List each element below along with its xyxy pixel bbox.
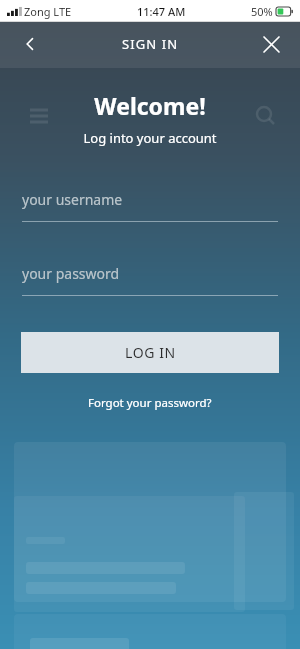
- staticText: SIGN IN: [122, 35, 179, 53]
- staticText: 11:47 AM: [137, 4, 186, 19]
- staticText: LOG IN: [125, 343, 176, 362]
- button[interactable]: Close: [255, 28, 287, 60]
- button[interactable]: LOG IN: [21, 332, 279, 373]
- staticText: 50%: [251, 4, 273, 19]
- staticText: Welcome!: [0, 90, 300, 121]
- button[interactable]: your password: [22, 264, 278, 296]
- button[interactable]: Forgot your password?: [80, 392, 220, 414]
- staticText: Forgot your password?: [88, 395, 212, 411]
- button[interactable]: your username: [22, 190, 278, 222]
- staticText: your username: [22, 190, 123, 209]
- staticText: your password: [22, 264, 120, 283]
- staticText: Log into your account: [0, 129, 300, 147]
- button[interactable]: Back: [14, 28, 46, 60]
- staticText: Zong LTE: [24, 4, 72, 19]
